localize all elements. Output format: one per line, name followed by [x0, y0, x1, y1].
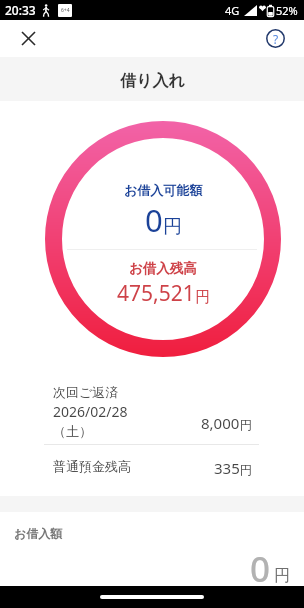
button[interactable]: Close: [14, 24, 43, 53]
staticText: お借入可能額: [124, 182, 203, 198]
staticText: 4G: [225, 3, 240, 18]
staticText: 普通預金残高: [53, 458, 131, 474]
staticText: 円: [274, 566, 290, 586]
staticText: ?: [273, 31, 279, 47]
button[interactable]: Help: [261, 24, 290, 53]
staticText: 8,000: [201, 413, 240, 433]
staticText: 335: [214, 458, 240, 478]
staticText: 0: [250, 545, 271, 593]
staticText: 0: [145, 199, 163, 241]
staticText: （土）: [53, 423, 92, 439]
staticText: 6+4: [61, 7, 70, 14]
staticText: お借入残高: [129, 260, 197, 277]
staticText: 20:33: [5, 2, 36, 18]
staticText: 475,521: [117, 279, 195, 308]
staticText: お借入額: [14, 526, 63, 541]
staticText: 円: [163, 215, 182, 239]
staticText: 円: [240, 417, 252, 432]
staticText: 借り入れ: [120, 71, 185, 91]
staticText: 円: [240, 462, 252, 477]
staticText: 次回ご返済: [53, 384, 119, 400]
staticText: 2026/02/28: [53, 402, 128, 421]
staticText: 円: [195, 288, 210, 307]
staticText: 52%: [276, 3, 298, 18]
